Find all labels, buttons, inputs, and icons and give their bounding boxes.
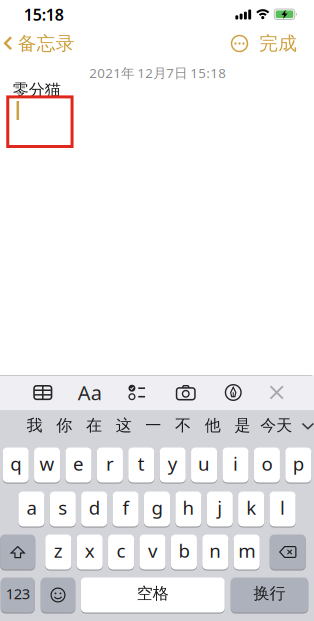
button[interactable]: 备忘录: [0, 32, 75, 55]
staticText: c: [117, 538, 126, 563]
staticText: g: [151, 495, 162, 520]
button[interactable]: 你: [49, 410, 79, 446]
staticText: f: [123, 495, 129, 520]
button[interactable]: b: [171, 534, 197, 570]
staticText: 不: [175, 416, 191, 435]
button[interactable]: 更多: [231, 35, 248, 52]
button[interactable]: 表情符号: [41, 577, 75, 613]
staticText: 零分猫: [13, 80, 61, 100]
staticText: y: [168, 451, 178, 476]
button[interactable]: 关闭: [256, 375, 298, 410]
button[interactable]: t: [128, 447, 154, 483]
button[interactable]: l: [270, 491, 296, 527]
staticText: x: [85, 538, 95, 563]
button[interactable]: m: [234, 534, 260, 570]
button[interactable]: a: [18, 491, 44, 527]
staticText: b: [178, 538, 189, 563]
staticText: a: [26, 495, 36, 520]
button[interactable]: u: [191, 447, 217, 483]
staticText: 他: [205, 416, 221, 435]
button[interactable]: 一: [138, 410, 168, 446]
button[interactable]: 是: [228, 410, 257, 446]
button[interactable]: 表格: [19, 375, 67, 410]
staticText: m: [238, 538, 255, 563]
button[interactable]: f: [113, 491, 139, 527]
staticText: 今天: [260, 416, 292, 435]
button[interactable]: 123: [1, 577, 35, 613]
button[interactable]: o: [254, 447, 280, 483]
button[interactable]: x: [77, 534, 103, 570]
button[interactable]: 格式: [67, 375, 113, 410]
staticText: z: [54, 538, 63, 563]
staticText: i: [233, 451, 238, 476]
button[interactable]: 核对清单: [113, 375, 161, 410]
staticText: p: [293, 451, 304, 476]
button[interactable]: 空格: [81, 577, 225, 613]
button[interactable]: z: [45, 534, 71, 570]
button[interactable]: Shift: [0, 534, 35, 570]
button[interactable]: 这: [109, 410, 138, 446]
staticText: 你: [56, 416, 72, 435]
button[interactable]: 他: [198, 410, 228, 446]
staticText: n: [209, 538, 221, 563]
staticText: q: [10, 451, 21, 476]
staticText: 完成: [259, 32, 297, 55]
staticText: 我: [27, 416, 43, 435]
button[interactable]: r: [97, 447, 123, 483]
button[interactable]: j: [207, 491, 233, 527]
button[interactable]: d: [81, 491, 107, 527]
button[interactable]: w: [34, 447, 60, 483]
button[interactable]: e: [65, 447, 92, 483]
button[interactable]: p: [285, 447, 311, 483]
staticText: t: [138, 451, 145, 476]
button[interactable]: 换行: [231, 577, 308, 613]
staticText: 这: [116, 416, 132, 435]
button[interactable]: g: [144, 491, 170, 527]
staticText: w: [40, 451, 55, 476]
button[interactable]: k: [238, 491, 264, 527]
button[interactable]: 在: [79, 410, 109, 446]
staticText: 空格: [137, 584, 169, 603]
staticText: s: [58, 495, 67, 520]
staticText: d: [89, 495, 100, 520]
button[interactable]: h: [175, 491, 201, 527]
staticText: o: [261, 451, 272, 476]
button[interactable]: 我: [20, 410, 49, 446]
staticText: h: [182, 495, 194, 520]
button[interactable]: 不: [168, 410, 198, 446]
staticText: 换行: [253, 584, 285, 603]
staticText: e: [73, 451, 84, 476]
staticText: 2021年 12月7日 15:18: [89, 64, 226, 82]
button[interactable]: v: [139, 534, 165, 570]
staticText: 一: [145, 416, 161, 435]
button[interactable]: i: [222, 447, 249, 483]
button[interactable]: c: [108, 534, 134, 570]
staticText: k: [246, 495, 256, 520]
button[interactable]: q: [3, 447, 29, 483]
staticText: 15:18: [24, 4, 64, 25]
staticText: 123: [6, 584, 30, 603]
button[interactable]: 删除: [270, 534, 306, 570]
staticText: 在: [86, 416, 102, 435]
staticText: j: [217, 495, 222, 520]
staticText: r: [106, 451, 114, 476]
staticText: Aa: [78, 379, 102, 406]
button[interactable]: 今天: [257, 410, 295, 446]
button[interactable]: s: [50, 491, 76, 527]
button[interactable]: 相机: [161, 375, 211, 410]
staticText: l: [280, 495, 285, 520]
button[interactable]: 展开候选字: [294, 408, 314, 444]
staticText: v: [148, 538, 157, 563]
staticText: 是: [234, 416, 250, 435]
staticText: 备忘录: [18, 32, 75, 55]
button[interactable]: y: [160, 447, 186, 483]
button[interactable]: n: [202, 534, 228, 570]
button[interactable]: 标记: [211, 375, 256, 410]
button[interactable]: 完成: [248, 32, 314, 55]
staticText: u: [198, 451, 210, 476]
